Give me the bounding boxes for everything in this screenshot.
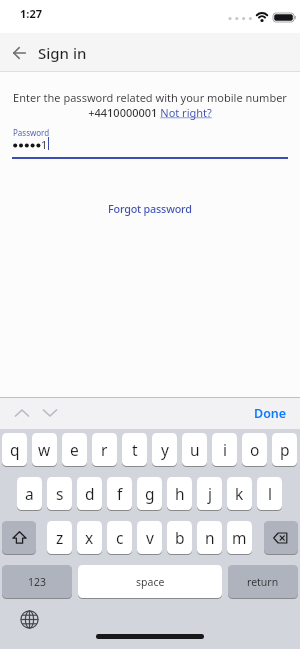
button[interactable] (36, 401, 64, 425)
button[interactable]: i (212, 433, 237, 466)
button[interactable] (6, 39, 33, 66)
button[interactable]: a (17, 477, 42, 510)
staticText: d (85, 483, 95, 504)
staticText: u (190, 439, 200, 460)
staticText: 1 (41, 137, 48, 152)
staticText: q (10, 439, 20, 460)
staticText: b (175, 527, 185, 548)
staticText: m (232, 527, 247, 548)
button[interactable]: u (182, 433, 207, 466)
staticText: z (56, 527, 64, 548)
button[interactable]: k (227, 477, 252, 510)
staticText: f (117, 483, 123, 504)
button[interactable]: +4410000001 Not right? (0, 105, 300, 120)
staticText: Password (13, 127, 50, 138)
staticText: Forgot password (108, 201, 192, 216)
staticText: x (85, 527, 94, 548)
button[interactable] (264, 521, 298, 554)
staticText: g (145, 483, 155, 504)
button[interactable]: n (197, 521, 222, 554)
staticText: 123 (28, 575, 47, 589)
staticText: l (268, 483, 272, 504)
staticText: Sign in (38, 43, 87, 63)
button[interactable]: t (122, 433, 147, 466)
button[interactable]: b (167, 521, 192, 554)
staticText: v (146, 527, 154, 548)
button[interactable]: l (257, 477, 282, 510)
button[interactable]: 123 (2, 565, 72, 598)
staticText: j (208, 483, 212, 504)
button[interactable]: Forgot password (95, 198, 205, 219)
staticText: y (161, 439, 169, 460)
staticText: s (56, 483, 64, 504)
staticText: k (235, 483, 244, 504)
staticText: i (223, 439, 227, 460)
button[interactable]: p (272, 433, 297, 466)
staticText: p (280, 439, 290, 460)
staticText: 1:27 (20, 6, 42, 21)
button[interactable]: y (152, 433, 177, 466)
staticText: space (136, 575, 165, 589)
button[interactable]: o (242, 433, 267, 466)
button[interactable]: c (107, 521, 132, 554)
staticText: return (247, 575, 279, 589)
button[interactable]: s (47, 477, 72, 510)
staticText: a (25, 483, 34, 504)
button[interactable]: q (2, 433, 27, 466)
button[interactable]: return (228, 565, 298, 598)
staticText: e (70, 439, 79, 460)
staticText: h (175, 483, 185, 504)
button[interactable]: x (77, 521, 102, 554)
button[interactable]: m (227, 521, 252, 554)
button[interactable] (2, 521, 36, 554)
staticText: w (38, 439, 51, 460)
button[interactable]: z (47, 521, 72, 554)
staticText: r (101, 439, 108, 460)
button[interactable]: h (167, 477, 192, 510)
staticText: Enter the password related with your mob… (0, 90, 300, 105)
button[interactable]: r (92, 433, 117, 466)
staticText: Done (254, 405, 287, 422)
staticText: c (116, 527, 124, 548)
button[interactable]: j (197, 477, 222, 510)
button[interactable]: v (137, 521, 162, 554)
staticText: n (205, 527, 215, 548)
button[interactable]: f (107, 477, 132, 510)
button[interactable]: Done (254, 405, 287, 422)
button[interactable] (8, 401, 36, 425)
button[interactable]: e (62, 433, 87, 466)
staticText: t (132, 439, 138, 460)
button[interactable] (17, 607, 41, 631)
button[interactable]: g (137, 477, 162, 510)
button[interactable]: w (32, 433, 57, 466)
button[interactable]: space (78, 565, 222, 598)
staticText: o (250, 439, 260, 460)
button[interactable]: d (77, 477, 102, 510)
